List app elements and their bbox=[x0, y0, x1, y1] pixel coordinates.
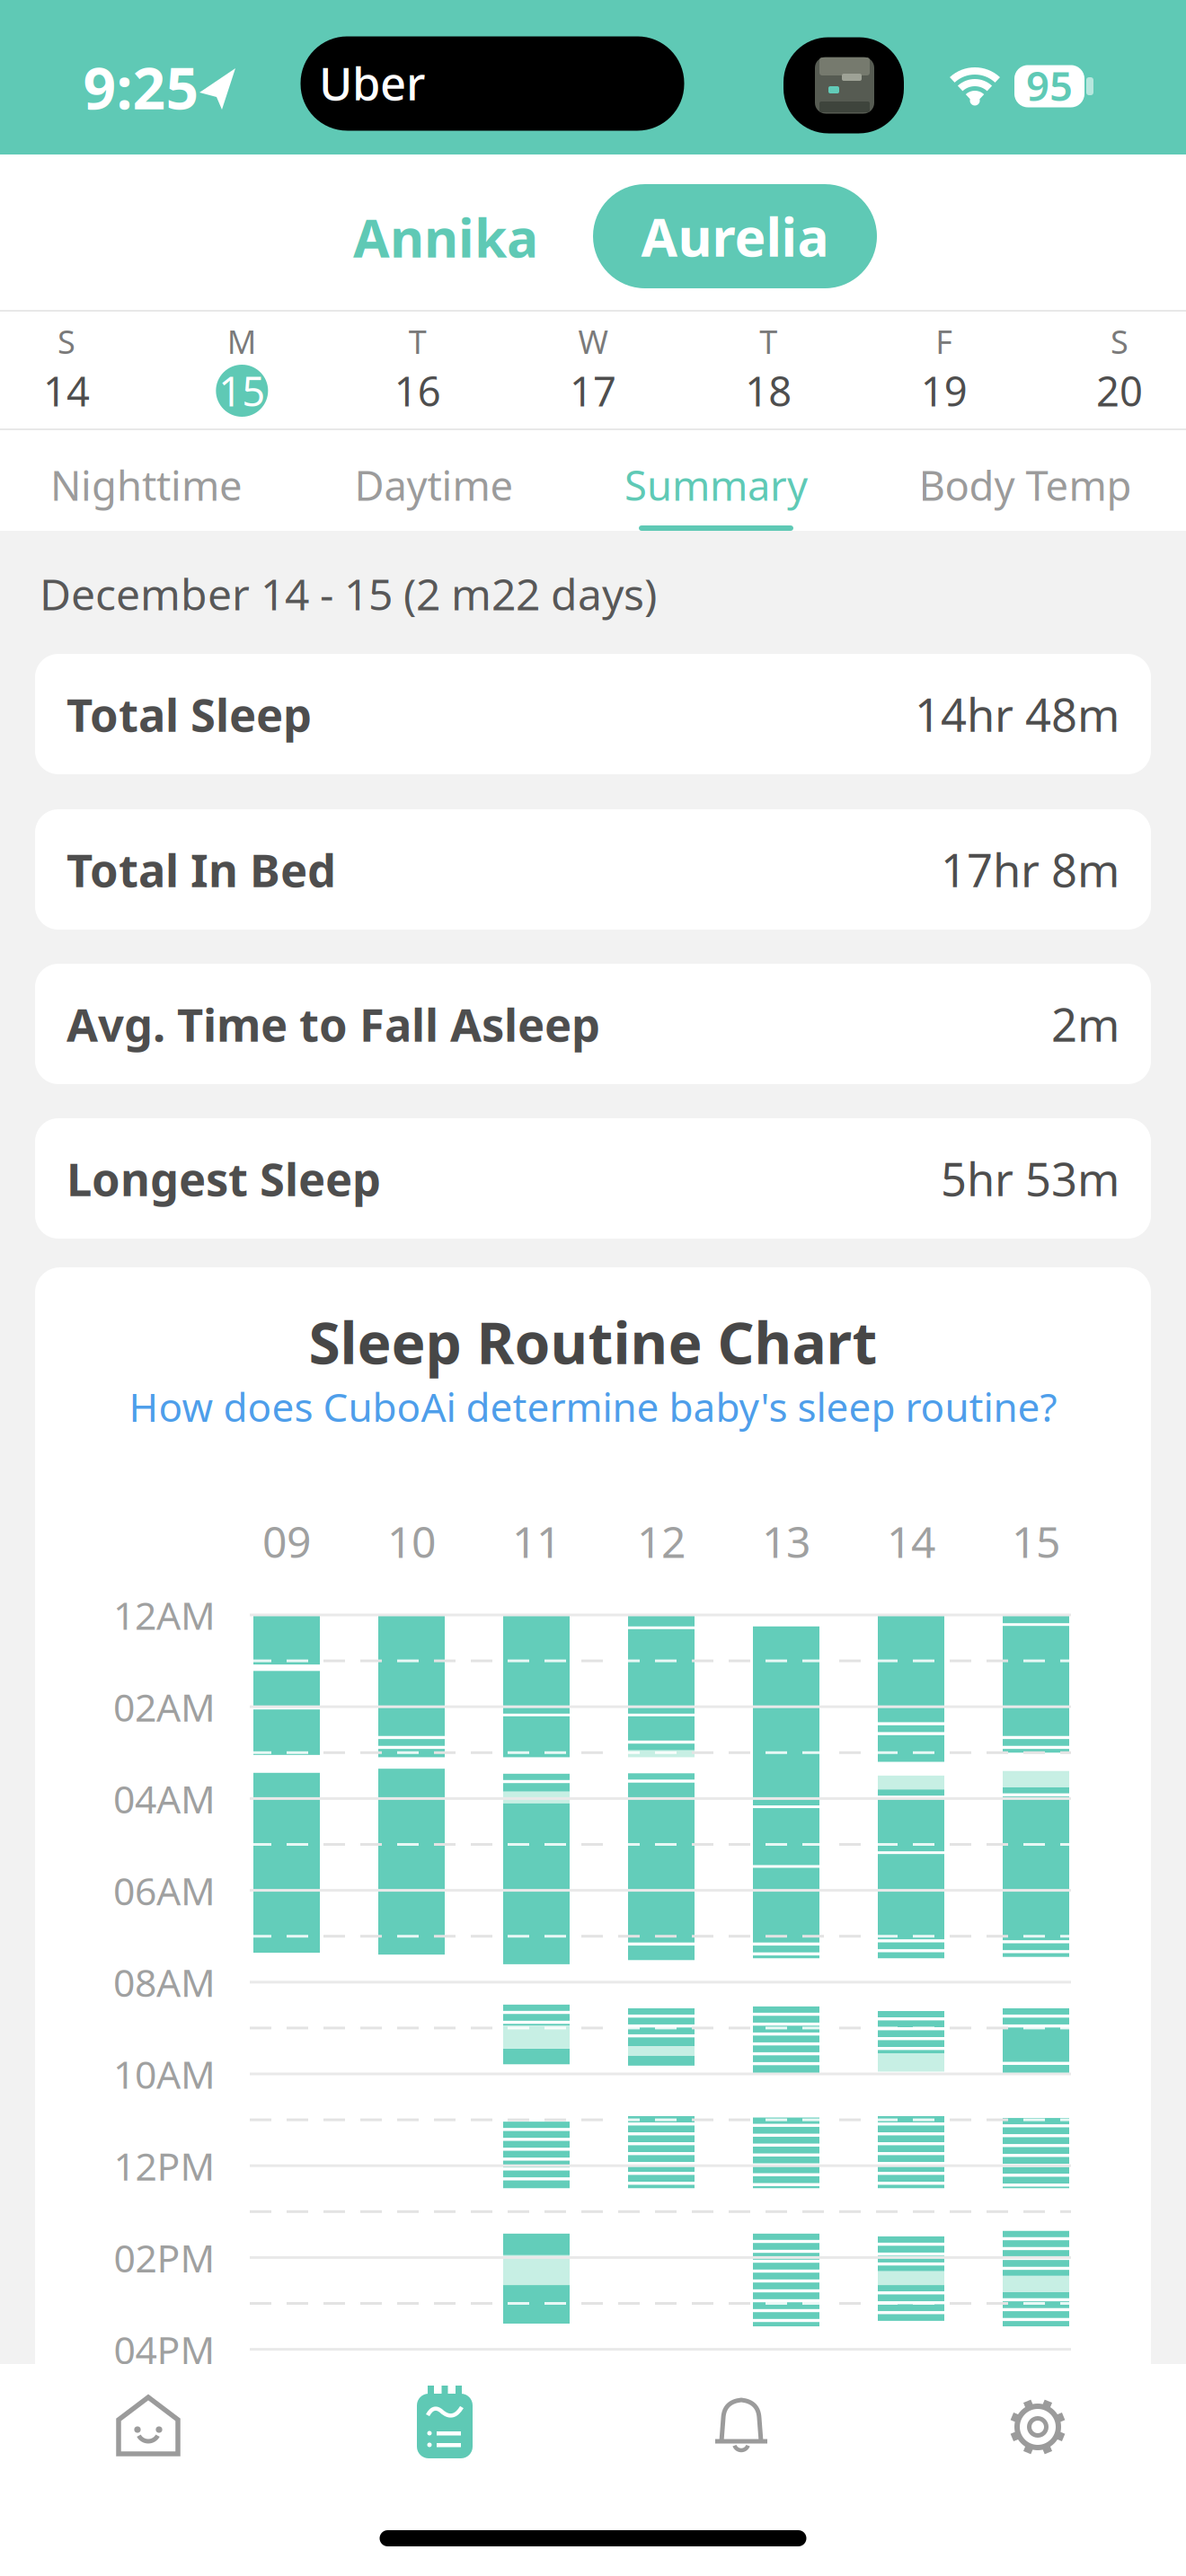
staticText: 09 bbox=[262, 1513, 311, 1570]
staticText: 11 bbox=[512, 1513, 561, 1570]
button[interactable]: Body Temp bbox=[886, 440, 1164, 530]
button[interactable]: Summary bbox=[577, 440, 855, 530]
button[interactable]: Nighttime bbox=[7, 440, 286, 530]
staticText: How does CuboAi determine baby's sleep r… bbox=[129, 1380, 1057, 1433]
button[interactable]: F bbox=[859, 314, 1029, 429]
staticText: 17 bbox=[570, 364, 616, 418]
button[interactable]: S bbox=[1034, 314, 1186, 429]
staticText: Summary bbox=[624, 458, 808, 512]
staticText: 15 bbox=[1012, 1513, 1060, 1570]
staticText: 10AM bbox=[113, 2048, 216, 2099]
staticText: 02PM bbox=[114, 2232, 215, 2283]
staticText: W bbox=[578, 320, 608, 363]
staticText: Longest Sleep bbox=[66, 1148, 381, 1209]
staticText: F bbox=[936, 320, 953, 363]
staticText: December 14 - 15 (2 m22 days) bbox=[40, 565, 657, 622]
button[interactable]: M bbox=[157, 314, 327, 429]
staticText: 2m bbox=[1051, 994, 1120, 1054]
staticText: 9:25 bbox=[83, 49, 199, 125]
staticText: S bbox=[1111, 320, 1128, 363]
staticText: T bbox=[409, 320, 427, 363]
button[interactable]: T bbox=[683, 314, 854, 429]
staticText: 10 bbox=[387, 1513, 436, 1570]
button[interactable]: Settings bbox=[934, 2364, 1141, 2490]
staticText: 5hr 53m bbox=[941, 1148, 1120, 1209]
staticText: 19 bbox=[921, 364, 967, 418]
staticText: Uber bbox=[319, 52, 425, 113]
staticText: 20 bbox=[1096, 364, 1143, 418]
staticText: Total In Bed bbox=[66, 839, 336, 900]
staticText: Body Temp bbox=[919, 458, 1132, 512]
button[interactable]: Daytime bbox=[295, 440, 573, 530]
staticText: 14 bbox=[43, 364, 90, 418]
staticText: M bbox=[227, 320, 257, 363]
staticText: 15 bbox=[219, 364, 265, 418]
staticText: 13 bbox=[762, 1513, 810, 1570]
staticText: 04PM bbox=[114, 2324, 215, 2375]
staticText: 12AM bbox=[113, 1590, 216, 1640]
staticText: S bbox=[58, 320, 75, 363]
button[interactable]: How does CuboAi determine baby's sleep r… bbox=[40, 1375, 1146, 1438]
staticText: 12PM bbox=[114, 2140, 215, 2191]
staticText: Aurelia bbox=[641, 201, 829, 271]
button[interactable]: S bbox=[0, 314, 152, 429]
staticText: Annika bbox=[353, 202, 538, 272]
staticText: 08AM bbox=[113, 1957, 216, 2008]
staticText: Nighttime bbox=[50, 458, 243, 512]
staticText: 12 bbox=[637, 1513, 686, 1570]
staticText: T bbox=[759, 320, 777, 363]
button[interactable]: Annika bbox=[297, 188, 594, 287]
staticText: 18 bbox=[745, 364, 792, 418]
staticText: 02AM bbox=[113, 1681, 216, 1732]
staticText: Avg. Time to Fall Asleep bbox=[66, 994, 600, 1054]
staticText: 95 bbox=[1026, 58, 1073, 112]
staticText: 06AM bbox=[113, 1865, 216, 1916]
staticText: 17hr 8m bbox=[941, 839, 1120, 900]
button[interactable]: Notifications bbox=[638, 2364, 845, 2490]
button[interactable]: Home bbox=[45, 2364, 252, 2490]
staticText: Sleep Routine Chart bbox=[309, 1304, 877, 1380]
staticText: 16 bbox=[394, 364, 441, 418]
button[interactable]: T bbox=[332, 314, 503, 429]
staticText: Daytime bbox=[354, 458, 513, 512]
staticText: 04AM bbox=[113, 1773, 216, 1824]
button[interactable]: Aurelia bbox=[593, 184, 877, 288]
staticText: 14 bbox=[887, 1513, 935, 1570]
button[interactable]: Sleep Data bbox=[341, 2364, 548, 2490]
button[interactable]: W bbox=[508, 314, 678, 429]
staticText: Total Sleep bbox=[66, 684, 312, 744]
staticText: 14hr 48m bbox=[915, 684, 1120, 744]
